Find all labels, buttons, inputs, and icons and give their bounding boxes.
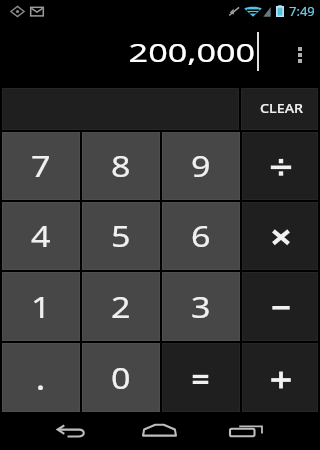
staticText: 0 (111, 358, 131, 398)
button[interactable]: 3 (162, 272, 240, 341)
button[interactable]: CLEAR (241, 88, 318, 130)
button[interactable]: Add (242, 343, 318, 412)
button[interactable]: 4 (2, 202, 80, 270)
staticText: 200,000 (129, 34, 256, 69)
staticText: CLEAR (260, 99, 304, 116)
button[interactable]: Home (135, 411, 183, 449)
button[interactable]: 7 (2, 132, 80, 200)
staticText: 8 (111, 146, 131, 186)
staticText: 7:49 (289, 2, 315, 20)
button[interactable]: 9 (162, 132, 240, 200)
button[interactable]: Divide (242, 132, 318, 200)
button[interactable]: Back (48, 411, 96, 449)
button[interactable]: 0 (82, 343, 160, 412)
button[interactable]: Equals (162, 343, 240, 412)
button[interactable]: Multiply (242, 202, 318, 270)
button[interactable]: 2 (82, 272, 160, 341)
button[interactable]: 5 (82, 202, 160, 270)
staticText: 6 (191, 216, 211, 256)
staticText: 4 (31, 216, 51, 256)
staticText: . (35, 356, 46, 400)
button[interactable]: 6 (162, 202, 240, 270)
button[interactable]: Subtract (242, 272, 318, 341)
button[interactable]: 8 (82, 132, 160, 200)
button[interactable]: 1 (2, 272, 80, 341)
button[interactable]: More options (280, 22, 320, 88)
button[interactable]: Recent apps (222, 411, 270, 449)
button[interactable]: . (2, 343, 80, 412)
staticText: 9 (191, 146, 211, 186)
staticText: 1 (31, 287, 51, 327)
staticText: 3 (191, 287, 211, 327)
staticText: 2 (111, 287, 131, 327)
staticText: 5 (111, 216, 131, 256)
staticText: 7 (31, 146, 51, 186)
